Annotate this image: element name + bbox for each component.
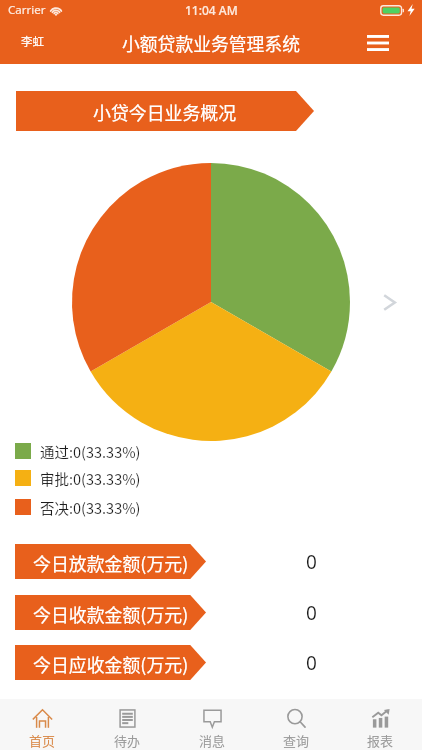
button[interactable]: 首页 [0, 699, 85, 750]
staticText: Carrier [8, 2, 46, 18]
button[interactable]: 今日收款金额(万元) [15, 595, 206, 630]
staticText: 小额贷款业务管理系统 [122, 30, 300, 56]
button[interactable]: 报表 [338, 699, 422, 750]
button[interactable]: 今日放款金额(万元) [15, 544, 206, 579]
staticText: 0 [306, 650, 317, 676]
button[interactable]: Menu [362, 27, 394, 59]
staticText: 0 [306, 600, 317, 626]
staticText: 今日收款金额(万元) [33, 601, 189, 627]
staticText: 首页 [29, 731, 56, 750]
button[interactable]: 待办 [85, 699, 170, 750]
button[interactable]: 小贷今日业务概况 [16, 91, 314, 131]
button[interactable]: 通过:0(33.33%) [15, 437, 141, 465]
staticText: 今日应收金额(万元) [33, 651, 189, 677]
staticText: 李虹 [21, 33, 44, 50]
staticText: 否决:0(33.33%) [40, 497, 141, 518]
staticText: 通过:0(33.33%) [40, 441, 141, 462]
button[interactable]: 否决:0(33.33%) [15, 493, 141, 521]
button[interactable]: 消息 [170, 699, 254, 750]
button[interactable]: Next [375, 288, 403, 316]
button[interactable]: 查询 [254, 699, 338, 750]
button[interactable]: 李虹 [12, 28, 52, 54]
staticText: 报表 [367, 731, 394, 750]
staticText: 待办 [114, 731, 141, 750]
button[interactable]: 今日应收金额(万元) [15, 645, 206, 680]
staticText: 查询 [283, 731, 310, 750]
staticText: 今日放款金额(万元) [33, 550, 189, 576]
staticText: 小贷今日业务概况 [93, 99, 237, 125]
staticText: 审批:0(33.33%) [40, 468, 141, 489]
staticText: 0 [306, 549, 317, 575]
button[interactable]: 审批:0(33.33%) [15, 464, 141, 492]
staticText: 11:04 AM [185, 2, 238, 18]
staticText: 消息 [199, 731, 226, 750]
